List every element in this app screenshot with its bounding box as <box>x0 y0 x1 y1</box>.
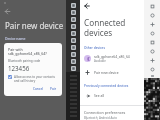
button[interactable]: Emulator control 8 <box>71 52 76 57</box>
button[interactable]: Tool 4 <box>150 31 155 36</box>
button[interactable]: Tool 7 <box>150 58 155 63</box>
staticText: See all <box>94 93 105 98</box>
button[interactable]: Cancel <box>31 86 46 92</box>
button[interactable]: Tool 8 <box>150 67 155 72</box>
staticText: Cancel <box>33 87 44 91</box>
staticText: Connected devices <box>84 17 144 38</box>
staticText: Allow access to your contacts and call h… <box>14 75 58 83</box>
button[interactable]: Emulator control 9 <box>71 59 76 64</box>
button[interactable]: Tool 2 <box>150 13 155 18</box>
staticText: Pair new device <box>94 70 119 75</box>
staticText: Device name <box>5 36 26 41</box>
staticText: Pair new device <box>5 20 64 31</box>
button[interactable]: Tool 3 <box>150 22 155 27</box>
staticText: Available <box>94 59 106 63</box>
button[interactable]: Tool 6 <box>150 49 155 54</box>
staticText: Pair with sdk_gphone64_x86_64? <box>8 47 58 56</box>
staticText: Previously connected devices <box>84 84 129 88</box>
button[interactable]: Tool 5 <box>150 40 155 45</box>
button[interactable]: Emulator control 1 <box>71 3 76 8</box>
button[interactable]: Emulator control 2 <box>71 10 76 15</box>
staticText: sdk_gphone64_x86_64 <box>94 54 130 59</box>
button[interactable]: Back <box>3 7 12 16</box>
staticText: Connection preferences <box>84 110 126 115</box>
button[interactable]: sdk_gphone64_x86_64 <box>80 53 144 64</box>
button[interactable]: Tool 1 <box>150 4 155 9</box>
staticText: Pair <box>50 87 56 91</box>
button[interactable]: Emulator control 3 <box>71 17 76 22</box>
button[interactable]: Emulator control 7 <box>71 45 76 50</box>
button[interactable]: Pair new device <box>80 68 144 77</box>
staticText: Other devices <box>84 46 105 50</box>
button[interactable]: Emulator control 5 <box>71 31 76 36</box>
button[interactable]: Pair <box>48 86 58 92</box>
staticText: Bluetooth pairing code <box>8 59 41 63</box>
staticText: sdk_gphone64_x86_64 <box>5 43 39 47</box>
button[interactable]: Emulator control 6 <box>71 38 76 43</box>
button[interactable]: Back <box>83 2 91 10</box>
staticText: 123456 <box>8 64 30 72</box>
button[interactable]: Emulator control 10 <box>71 66 76 71</box>
button[interactable]: See all <box>80 91 144 100</box>
button[interactable]: Connection preferences <box>80 110 144 120</box>
staticText: Bluetooth, Android Auto <box>84 116 117 120</box>
button[interactable]: Emulator control 4 <box>71 24 76 29</box>
button[interactable]: Allow access checkbox <box>8 75 12 79</box>
